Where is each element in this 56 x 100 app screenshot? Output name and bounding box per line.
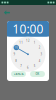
staticText: 12 <box>26 39 30 42</box>
staticText: 9 <box>13 52 15 56</box>
staticText: 10:00 <box>12 21 43 37</box>
staticText: 6 <box>27 66 29 69</box>
staticText: OK <box>35 72 39 76</box>
button[interactable]: CANCEL <box>11 71 26 77</box>
staticText: 3 <box>40 52 42 56</box>
button[interactable]: OK <box>30 71 45 77</box>
staticText: 4 <box>39 59 41 63</box>
staticText: 10 <box>14 46 18 49</box>
staticText: 11 <box>19 41 23 44</box>
staticText: CANCEL <box>13 72 23 76</box>
button[interactable]: Back <box>1 8 12 17</box>
staticText: 2 <box>39 46 41 49</box>
staticText: 7 <box>20 64 22 68</box>
staticText: 1 <box>34 41 36 44</box>
staticText: 8 <box>15 59 17 63</box>
staticText: 5 <box>34 64 36 68</box>
